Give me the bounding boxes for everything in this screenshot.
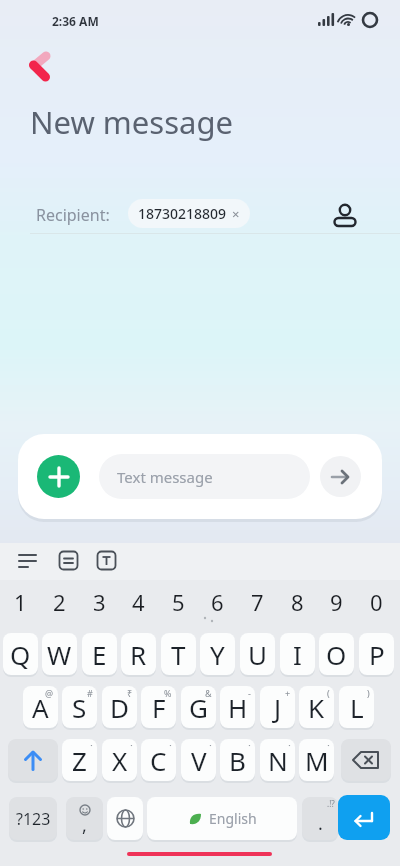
button[interactable] [97,551,116,570]
button[interactable]: M [299,739,334,781]
staticText: W [47,637,72,672]
button[interactable] [26,48,56,84]
button[interactable]: C [141,739,176,781]
staticText: New message [30,101,233,143]
staticText: , [82,813,87,838]
button[interactable]: 6 [200,587,235,615]
staticText: ˑ [169,740,172,752]
button[interactable]: K [299,686,334,728]
staticText: # [87,687,93,699]
button[interactable]: English [147,797,297,840]
staticText: ₹ [127,687,133,699]
button[interactable]: L [339,686,374,728]
staticText: 1 [14,587,27,615]
button[interactable] [37,455,80,498]
staticText: V [191,743,207,778]
button[interactable]: B [220,739,255,781]
button[interactable]: , [66,797,103,840]
staticText: Z [72,743,87,778]
button[interactable]: Z [62,739,97,781]
button[interactable]: Q [3,633,38,675]
button[interactable]: T [161,633,196,675]
button[interactable] [341,739,391,781]
staticText: ˑ [248,740,251,752]
button[interactable]: 9 [319,587,354,615]
staticText: B [229,743,246,778]
staticText: R [130,637,147,672]
staticText: @ [45,687,54,699]
button[interactable]: 7 [240,587,275,615]
staticText: A [32,690,49,725]
button[interactable] [338,795,390,840]
button[interactable]: 18730218809 [128,199,250,228]
button[interactable]: U [240,633,275,675]
staticText: D [110,690,129,725]
staticText: 5 [172,587,185,615]
staticText: O [326,637,347,672]
button[interactable]: Y [200,633,235,675]
button[interactable]: J [260,686,295,728]
staticText: C [150,743,167,778]
button[interactable] [107,797,143,840]
staticText: ˑ [90,740,93,752]
button[interactable]: 3 [82,587,117,615]
button[interactable]: V [181,739,216,781]
staticText: N [268,743,288,778]
staticText: 9 [330,587,343,615]
staticText: S [72,690,87,725]
button[interactable]: F [141,686,176,728]
button[interactable]: R [121,633,156,675]
staticText: × [232,205,240,223]
staticText: .!? [327,798,335,809]
button[interactable]: O [319,633,354,675]
staticText: E [92,637,107,672]
staticText: 0 [370,587,383,615]
staticText: ?123 [16,808,51,830]
staticText: ˑ [130,740,133,752]
button[interactable]: I [280,633,315,675]
staticText: X [112,743,128,778]
button[interactable]: W [42,633,77,675]
button[interactable]: 2 [42,587,77,615]
button[interactable]: G [181,686,216,728]
staticText: Text message [117,467,213,487]
button[interactable] [332,200,358,228]
staticText: Q [10,637,31,672]
staticText: 18730218809 [138,204,227,223]
staticText: U [248,637,268,672]
button[interactable]: H [220,686,255,728]
button[interactable]: 4 [121,587,156,615]
staticText: F [152,690,166,725]
button[interactable]: A [23,686,58,728]
staticText: T [171,637,186,672]
staticText: H [228,690,248,725]
button[interactable] [8,739,58,781]
button[interactable]: 1 [3,587,38,615]
button[interactable]: N [260,739,295,781]
button[interactable]: 8 [280,587,315,615]
staticText: Recipient: [36,204,110,226]
staticText: K [308,690,325,725]
button[interactable]: X [102,739,137,781]
staticText: L [350,690,364,725]
button[interactable] [59,551,78,570]
staticText: ˑ [327,740,330,752]
button[interactable]: Text message [99,454,310,499]
staticText: I [293,637,302,672]
button[interactable]: 5 [161,587,196,615]
button[interactable]: E [82,633,117,675]
staticText: ˑ [288,740,291,752]
staticText: P [369,637,385,672]
button[interactable]: P [359,633,394,675]
staticText: 8 [291,587,304,615]
staticText: 2 [53,587,66,615]
button[interactable]: . [302,797,338,840]
button[interactable]: ?123 [9,797,57,840]
button[interactable]: 0 [359,587,394,615]
staticText: 2:36 AM [52,13,99,29]
staticText: ) [367,687,370,699]
button[interactable] [320,456,361,497]
button[interactable]: D [102,686,137,728]
button[interactable]: S [62,686,97,728]
button[interactable] [19,552,37,570]
